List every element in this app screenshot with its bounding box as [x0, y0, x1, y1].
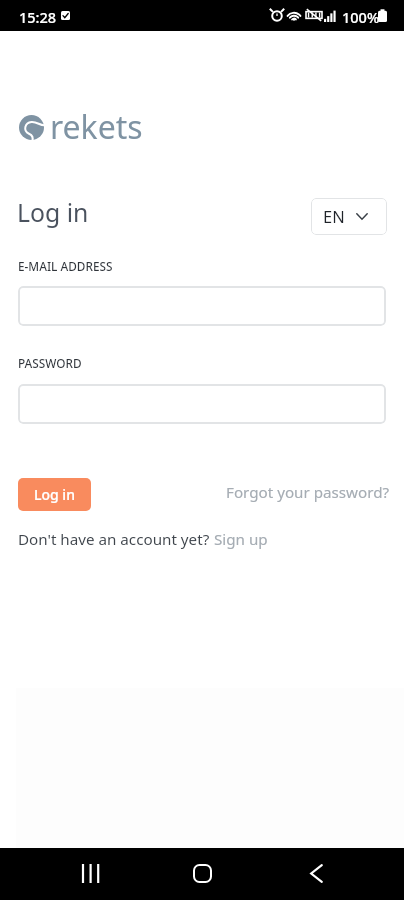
button[interactable]: Home: [174, 848, 230, 898]
staticText: 100%: [342, 7, 380, 27]
staticText: EN: [323, 205, 345, 227]
button[interactable]: [18, 384, 386, 424]
button[interactable]: Log in: [18, 478, 91, 511]
button[interactable]: Forgot your password?: [222, 480, 394, 505]
button[interactable]: [18, 286, 386, 326]
staticText: Log in: [17, 195, 89, 229]
button[interactable]: Recent apps: [61, 848, 117, 898]
button[interactable]: EN: [311, 198, 387, 235]
staticText: Don't have an account yet?: [18, 529, 214, 550]
staticText: E-MAIL ADDRESS: [18, 258, 113, 274]
button[interactable]: Sign up: [214, 529, 268, 550]
staticText: Forgot your password?: [226, 482, 390, 503]
staticText: Log in: [34, 485, 75, 504]
button[interactable]: Back: [288, 848, 344, 898]
staticText: PASSWORD: [18, 355, 82, 371]
staticText: Sign up: [214, 529, 268, 550]
staticText: 15:28: [19, 7, 57, 27]
staticText: rekets: [50, 105, 143, 149]
